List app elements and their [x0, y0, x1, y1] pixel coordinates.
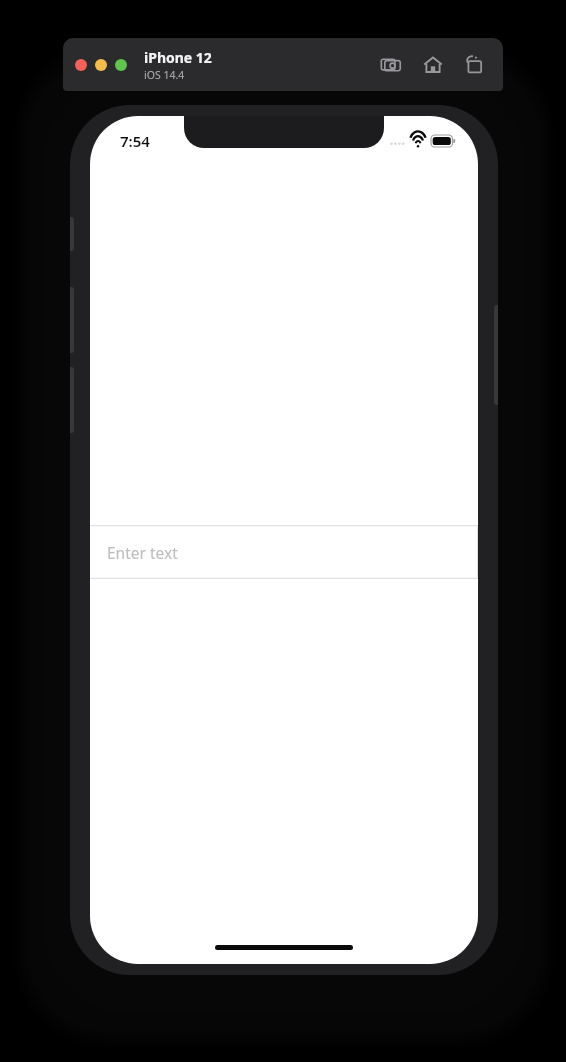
staticText: iPhone 12 [144, 48, 212, 67]
button[interactable]: Close [75, 59, 87, 71]
button[interactable]: Minimize [95, 59, 107, 71]
button[interactable]: Enter text [90, 525, 478, 579]
button[interactable]: Rotate [463, 53, 487, 77]
button[interactable]: Screenshot [379, 53, 403, 77]
staticText: Enter text [107, 542, 178, 563]
button[interactable]: Home [421, 53, 445, 77]
staticText: 7:54 [120, 131, 150, 151]
button[interactable]: Maximize [115, 59, 127, 71]
staticText: iOS 14.4 [144, 68, 185, 82]
